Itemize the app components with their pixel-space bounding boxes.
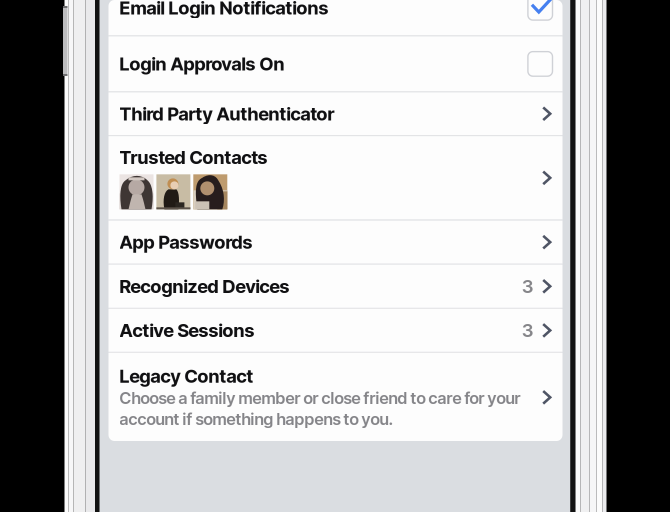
staticText: Active Sessions	[119, 319, 254, 342]
staticText: 3	[522, 275, 533, 297]
button[interactable]: Login Approvals On	[108, 36, 562, 91]
button[interactable]: Email Login Notifications	[108, 0, 562, 35]
staticText: account if something happens to you.	[119, 409, 393, 429]
button[interactable]: Legacy Contact	[108, 353, 562, 442]
button[interactable]: Active Sessions	[108, 309, 562, 352]
staticText: Email Login Notifications	[119, 0, 328, 19]
staticText: Trusted Contacts	[119, 146, 267, 168]
button[interactable]: Trusted Contacts	[108, 136, 562, 220]
button[interactable]: App Passwords	[108, 221, 562, 264]
button[interactable]: Third Party Authenticator	[108, 92, 562, 135]
staticText: Recognized Devices	[119, 275, 289, 297]
staticText: 3	[522, 319, 533, 342]
staticText: App Passwords	[119, 231, 252, 253]
button[interactable]: Recognized Devices	[108, 265, 562, 308]
staticText: Legacy Contact	[119, 365, 253, 387]
staticText: Login Approvals On	[119, 53, 284, 75]
staticText: Third Party Authenticator	[119, 103, 334, 125]
staticText: Choose a family member or close friend t…	[119, 388, 520, 408]
